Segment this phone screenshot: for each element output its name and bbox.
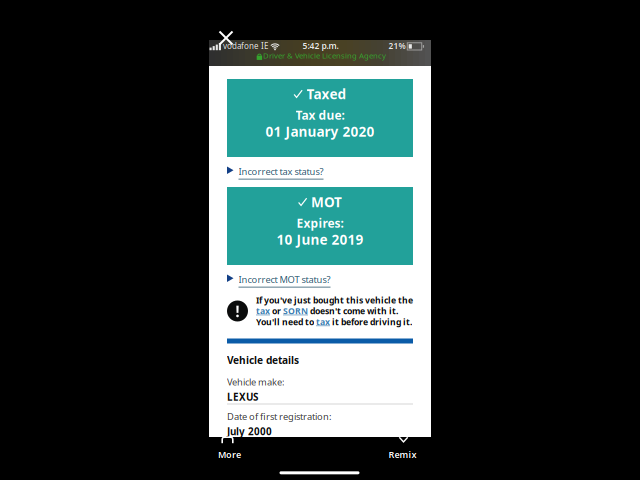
staticText: Date of first registration:	[227, 410, 332, 423]
staticText: If you've just bought this vehicle the	[256, 294, 413, 306]
staticText: it before driving it.	[330, 316, 412, 328]
staticText: SORN	[283, 305, 308, 317]
staticText: tax	[316, 316, 330, 328]
staticText: vodafone IE	[223, 40, 268, 51]
staticText: or	[270, 305, 283, 317]
staticText: You'll need to	[256, 316, 316, 328]
staticText: Expires:	[296, 215, 343, 231]
staticText: 5:42 p.m.	[302, 40, 338, 52]
staticText: Remix	[388, 448, 416, 461]
button[interactable]: Incorrect tax status?	[227, 165, 413, 179]
staticText: Tax due:	[295, 107, 344, 123]
staticText: Taxed	[306, 85, 346, 103]
staticText: July 2000	[227, 425, 272, 438]
button[interactable]: Close	[219, 31, 232, 44]
staticText: Incorrect tax status?	[238, 165, 323, 178]
button[interactable]: More	[218, 446, 258, 462]
staticText: 21%	[388, 40, 405, 51]
button[interactable]: Incorrect MOT status?	[227, 273, 413, 287]
staticText: tax	[256, 305, 270, 317]
staticText: MOT	[311, 193, 342, 211]
staticText: Incorrect MOT status?	[238, 273, 330, 286]
staticText: doesn't come with it.	[308, 305, 398, 317]
staticText: 10 June 2019	[276, 230, 363, 249]
staticText: More	[218, 448, 241, 461]
button[interactable]: Remix	[376, 446, 416, 462]
staticText: Vehicle details	[227, 353, 299, 367]
staticText: 01 January 2020	[265, 122, 374, 141]
staticText: Vehicle make:	[227, 375, 285, 388]
staticText: LEXUS	[227, 390, 258, 403]
staticText: Driver & Vehicle Licensing Agency	[263, 50, 386, 61]
